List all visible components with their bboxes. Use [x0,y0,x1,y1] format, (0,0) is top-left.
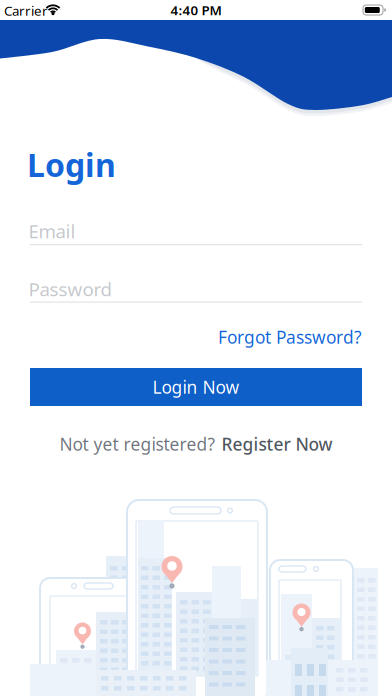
staticText: 4:40 PM [170,1,221,19]
staticText: Login [27,143,116,186]
staticText: Register Now [221,432,332,455]
button[interactable]: Password [30,274,362,304]
button[interactable]: Login Now [30,368,362,406]
staticText: Not yet registered? [59,432,215,455]
button[interactable]: Forgot Password? [218,325,362,348]
staticText: Password [28,277,111,301]
staticText: Login Now [152,375,239,398]
staticText: Carrier [4,2,48,19]
button[interactable]: Register Now [221,432,332,455]
button[interactable]: Email [30,216,362,246]
staticText: Email [28,219,75,243]
staticText: Forgot Password? [218,325,362,348]
